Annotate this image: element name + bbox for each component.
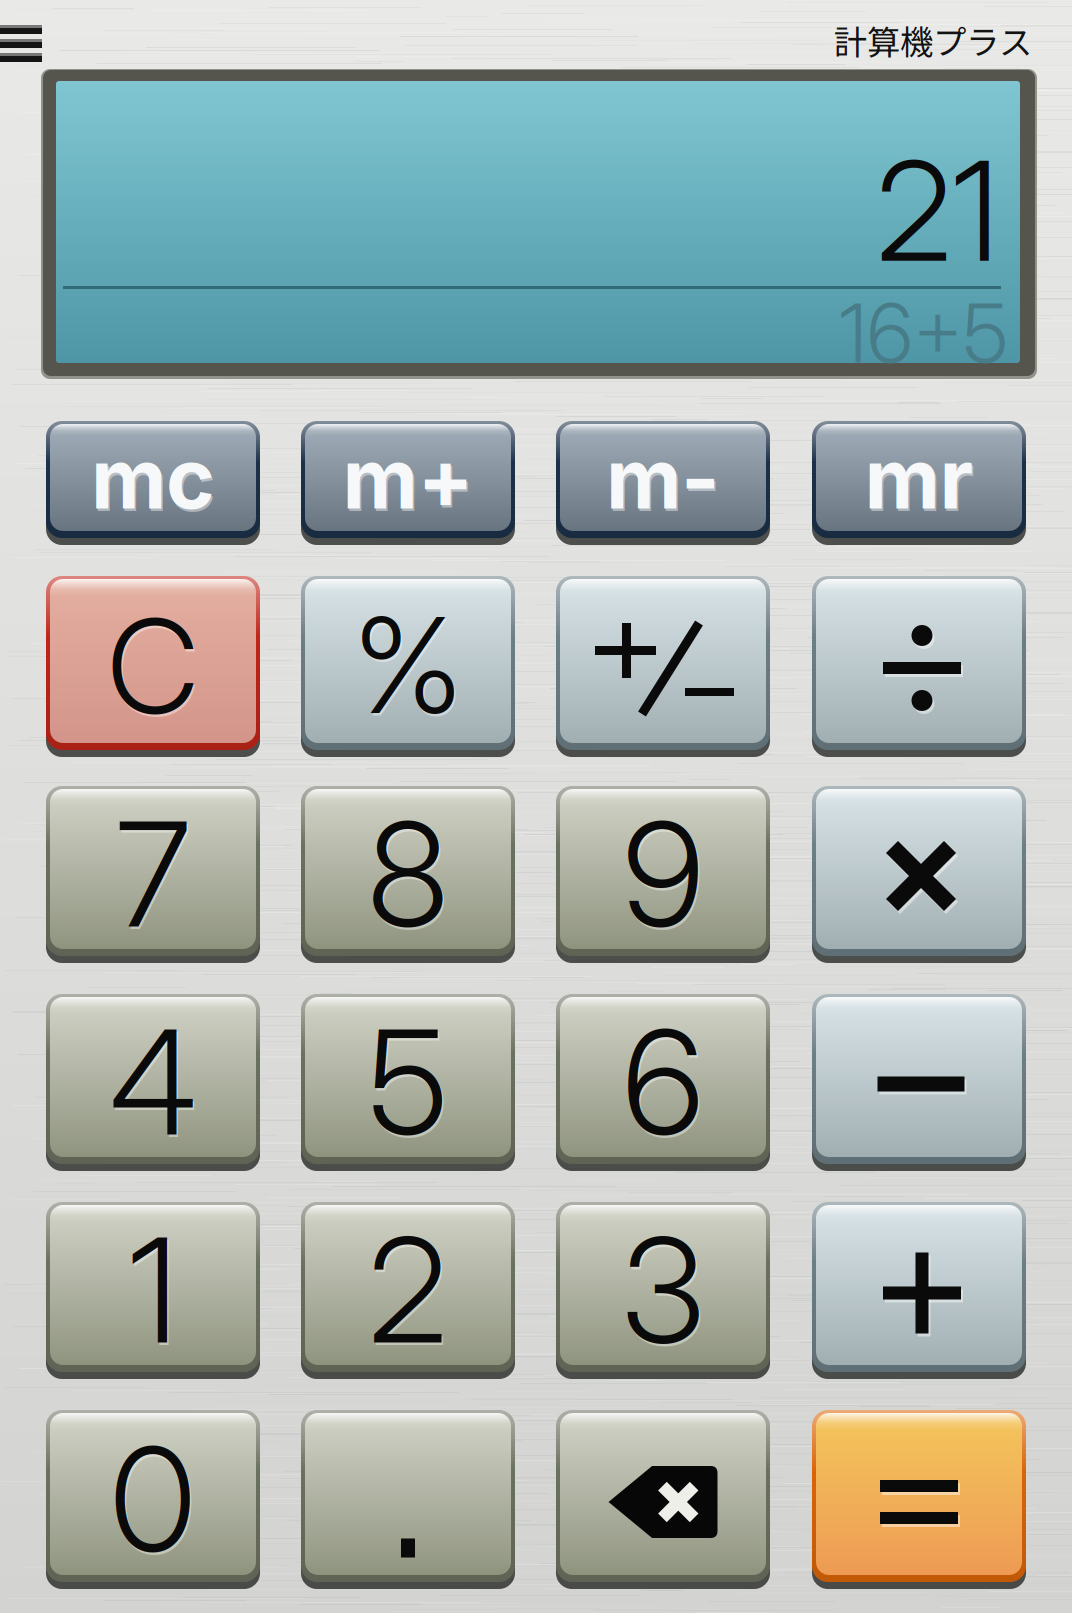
staticText: m+ [344, 431, 475, 531]
button[interactable]: Plus or minus [556, 576, 770, 750]
staticText: 6 [624, 997, 705, 1172]
staticText: 7 [116, 787, 190, 961]
button[interactable]: 6 [556, 994, 770, 1164]
staticText: 5 [369, 997, 449, 1172]
button[interactable]: m+ [301, 421, 515, 538]
staticText: m- [606, 428, 720, 528]
button[interactable]: mc [46, 421, 260, 538]
staticText: 2 [369, 1205, 449, 1380]
staticText: 3 [621, 1203, 704, 1377]
staticText: 0 [111, 1414, 197, 1589]
button[interactable]: 7 [46, 786, 260, 956]
staticText: mr [864, 428, 973, 528]
staticText: 0 [110, 1412, 196, 1586]
staticText: 9 [624, 789, 705, 964]
staticText: 1 [130, 1205, 179, 1380]
button[interactable]: 5 [301, 994, 515, 1164]
button[interactable]: Minus [812, 994, 1026, 1164]
staticText: C [108, 589, 200, 747]
button[interactable]: 3 [556, 1202, 770, 1372]
staticText: C [107, 587, 199, 745]
button[interactable]: 0 [46, 1410, 260, 1582]
staticText: % [353, 585, 462, 745]
button[interactable]: m- [556, 421, 770, 538]
staticText: m+ [342, 428, 473, 528]
staticText: 8 [369, 789, 450, 964]
staticText: mc [92, 431, 216, 531]
button[interactable]: Equals [812, 1410, 1026, 1582]
staticText: 3 [623, 1205, 706, 1380]
staticText: 2 [368, 1203, 448, 1377]
button[interactable]: 4 [46, 994, 260, 1164]
staticText: 16+5 [839, 284, 1008, 382]
button[interactable]: mr [812, 421, 1026, 538]
staticText: % [355, 588, 464, 747]
staticText: 6 [622, 995, 703, 1169]
button[interactable]: Menu [0, 25, 56, 82]
staticText: mr [866, 431, 975, 531]
button[interactable]: 8 [301, 786, 515, 956]
staticText: 8 [367, 787, 448, 961]
button[interactable]: 9 [556, 786, 770, 956]
staticText: 5 [368, 995, 448, 1169]
staticText: 4 [109, 995, 196, 1169]
button[interactable]: Divide [812, 576, 1026, 750]
staticText: 9 [622, 787, 703, 961]
staticText: 1 [128, 1203, 177, 1377]
staticText: m- [607, 431, 721, 531]
button[interactable]: 2 [301, 1202, 515, 1372]
button[interactable]: Multiply [812, 786, 1026, 956]
staticText: 計算機プラス [834, 16, 1032, 64]
staticText: mc [91, 428, 215, 528]
button[interactable]: 1 [46, 1202, 260, 1372]
button[interactable]: C [46, 576, 260, 750]
button[interactable]: Delete [556, 1410, 770, 1582]
staticText: 4 [111, 997, 198, 1172]
staticText: 7 [117, 789, 191, 964]
button[interactable]: Plus [812, 1202, 1026, 1372]
staticText: 21 [876, 128, 999, 294]
button[interactable]: Decimal point [301, 1410, 515, 1582]
button[interactable]: % [301, 576, 515, 750]
